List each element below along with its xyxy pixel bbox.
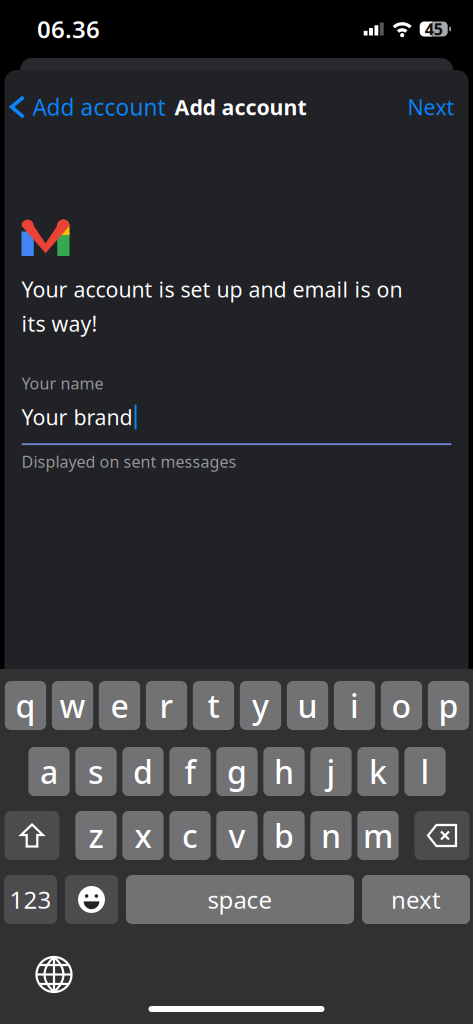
staticText: q bbox=[15, 684, 35, 727]
staticText: Next bbox=[407, 93, 454, 121]
staticText: u bbox=[297, 684, 317, 727]
button[interactable]: Shift bbox=[4, 811, 59, 860]
staticText: p bbox=[438, 684, 458, 727]
button[interactable]: Next bbox=[395, 83, 468, 131]
staticText: k bbox=[369, 750, 387, 793]
staticText: x bbox=[134, 814, 151, 857]
staticText: r bbox=[159, 684, 173, 727]
button[interactable]: m bbox=[357, 811, 399, 860]
button[interactable]: l bbox=[404, 747, 446, 796]
staticText: e bbox=[110, 684, 128, 727]
button[interactable]: u bbox=[287, 681, 328, 730]
button[interactable]: g bbox=[216, 747, 258, 796]
button[interactable]: Delete bbox=[414, 811, 469, 860]
staticText: i bbox=[350, 684, 359, 727]
staticText: j bbox=[326, 750, 335, 793]
button[interactable]: s bbox=[75, 747, 117, 796]
staticText: l bbox=[420, 750, 429, 793]
staticText: c bbox=[182, 814, 198, 857]
staticText: s bbox=[88, 750, 104, 793]
button[interactable]: k bbox=[357, 747, 399, 796]
button[interactable]: b bbox=[263, 811, 305, 860]
staticText: t bbox=[207, 684, 219, 727]
button[interactable]: Add account bbox=[4, 83, 169, 131]
staticText: n bbox=[321, 814, 341, 857]
staticText: Your account is set up and email is on i… bbox=[21, 275, 402, 338]
staticText: d bbox=[133, 750, 153, 793]
staticText: a bbox=[40, 750, 58, 793]
button[interactable]: o bbox=[381, 681, 422, 730]
staticText: Displayed on sent messages bbox=[21, 451, 236, 472]
staticText: y bbox=[252, 684, 269, 727]
button[interactable]: t bbox=[193, 681, 234, 730]
staticText: o bbox=[391, 684, 411, 727]
button[interactable]: p bbox=[428, 681, 469, 730]
staticText: m bbox=[363, 814, 393, 857]
staticText: Add account bbox=[32, 92, 165, 122]
staticText: Your name bbox=[21, 373, 103, 394]
staticText: Your brand bbox=[21, 403, 132, 431]
button[interactable]: f bbox=[169, 747, 211, 796]
button[interactable]: space bbox=[126, 875, 354, 924]
staticText: z bbox=[88, 814, 103, 857]
staticText: b bbox=[274, 814, 294, 857]
button[interactable]: d bbox=[122, 747, 164, 796]
button[interactable]: n bbox=[310, 811, 352, 860]
button[interactable]: 123 bbox=[4, 875, 57, 924]
button[interactable]: r bbox=[146, 681, 187, 730]
staticText: 06.36 bbox=[37, 13, 100, 45]
staticText: f bbox=[184, 750, 195, 793]
button[interactable]: Emoji bbox=[65, 875, 118, 924]
staticText: 45 bbox=[425, 18, 443, 40]
button[interactable]: h bbox=[263, 747, 305, 796]
button[interactable]: q bbox=[5, 681, 46, 730]
staticText: next bbox=[391, 884, 441, 915]
button[interactable]: z bbox=[75, 811, 117, 860]
staticText: Add account bbox=[174, 93, 306, 121]
staticText: h bbox=[274, 750, 294, 793]
button[interactable]: e bbox=[99, 681, 140, 730]
button[interactable]: i bbox=[334, 681, 375, 730]
button[interactable]: w bbox=[52, 681, 93, 730]
button[interactable]: a bbox=[28, 747, 70, 796]
button[interactable]: next bbox=[362, 875, 470, 924]
staticText: 123 bbox=[9, 884, 51, 915]
button[interactable]: j bbox=[310, 747, 352, 796]
button[interactable]: v bbox=[216, 811, 258, 860]
button[interactable]: x bbox=[122, 811, 164, 860]
button[interactable]: c bbox=[169, 811, 211, 860]
staticText: w bbox=[59, 684, 85, 727]
button[interactable]: Change keyboard bbox=[27, 948, 80, 1001]
button[interactable]: y bbox=[240, 681, 281, 730]
staticText: g bbox=[227, 750, 247, 793]
staticText: v bbox=[228, 814, 245, 857]
staticText: space bbox=[207, 884, 272, 915]
